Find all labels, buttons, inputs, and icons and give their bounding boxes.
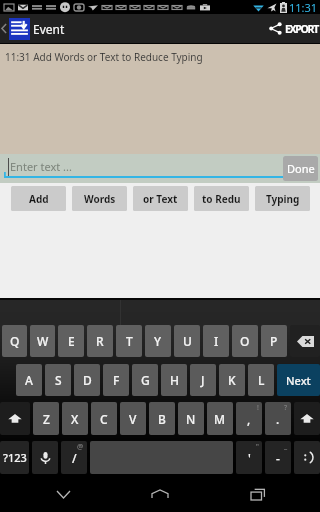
staticText: Enter text ... xyxy=(10,159,72,174)
staticText: M xyxy=(214,411,226,427)
button[interactable]: " xyxy=(236,441,262,474)
staticText: T xyxy=(126,333,133,349)
staticText: ' xyxy=(248,450,251,466)
staticText: J xyxy=(201,372,205,388)
button[interactable]: S xyxy=(45,364,71,396)
button[interactable]: B xyxy=(149,402,175,435)
staticText: " xyxy=(256,442,259,452)
button[interactable]: _ xyxy=(265,441,291,474)
staticText: 11:31 xyxy=(289,0,318,14)
button[interactable]: Back xyxy=(28,479,98,509)
staticText: Z xyxy=(43,411,50,427)
button[interactable]: Z xyxy=(33,402,59,435)
staticText: ? xyxy=(284,403,288,413)
staticText: N xyxy=(186,411,196,427)
staticText: U xyxy=(183,333,192,349)
staticText: C xyxy=(100,411,108,427)
staticText: . xyxy=(276,411,280,427)
button[interactable]: E xyxy=(58,325,84,357)
staticText: ?123 xyxy=(3,450,27,465)
staticText: ! xyxy=(257,403,259,413)
staticText: K xyxy=(228,372,236,388)
staticText: H xyxy=(170,372,179,388)
staticText: F xyxy=(113,372,120,388)
staticText: E xyxy=(68,333,75,349)
staticText: V xyxy=(129,411,137,427)
button[interactable]: C xyxy=(91,402,117,435)
staticText: A xyxy=(25,372,33,388)
button[interactable]: N xyxy=(178,402,204,435)
button[interactable]: O xyxy=(232,325,258,357)
staticText: S xyxy=(55,372,62,388)
button[interactable]: F xyxy=(103,364,129,396)
staticText: / xyxy=(72,450,77,466)
staticText: D xyxy=(83,372,92,388)
button[interactable]: Enter text ... xyxy=(4,154,280,183)
button[interactable]: Home xyxy=(125,479,195,509)
button[interactable]: Words xyxy=(72,186,127,211)
button[interactable]: I xyxy=(203,325,229,357)
staticText: Add xyxy=(29,192,49,206)
button[interactable]: X xyxy=(62,402,88,435)
button[interactable]: Y xyxy=(145,325,171,357)
button[interactable]: Recents xyxy=(223,479,293,509)
button[interactable]: T xyxy=(116,325,142,357)
button[interactable]: M xyxy=(207,402,233,435)
staticText: to Redu xyxy=(202,192,241,206)
button[interactable]: @ xyxy=(61,441,87,474)
button[interactable]: Navigate up xyxy=(0,14,69,43)
staticText: Words xyxy=(84,192,116,206)
button[interactable]: G xyxy=(132,364,158,396)
staticText: Done xyxy=(287,161,315,176)
staticText: X xyxy=(71,411,79,427)
button[interactable]: L xyxy=(248,364,274,396)
button[interactable]: Delete xyxy=(290,325,320,357)
staticText: Typing xyxy=(266,192,300,206)
button[interactable]: ?123 xyxy=(0,441,29,474)
button[interactable]: W xyxy=(30,325,55,357)
button[interactable]: A xyxy=(16,364,42,396)
button[interactable]: U xyxy=(174,325,200,357)
other: Shift xyxy=(8,413,22,425)
button[interactable]: Q xyxy=(2,325,27,357)
button[interactable]: Add xyxy=(11,186,66,211)
button[interactable]: V xyxy=(120,402,146,435)
staticText: _ xyxy=(284,442,288,452)
other: Shift xyxy=(300,413,314,425)
staticText: B xyxy=(158,411,166,427)
button[interactable]: D xyxy=(74,364,100,396)
button[interactable]: EXPORT xyxy=(261,14,320,43)
button[interactable]: Done xyxy=(283,156,318,181)
staticText: 11:31 Add Words or Text to Reduce Typing xyxy=(5,50,203,64)
button[interactable]: K xyxy=(219,364,245,396)
button[interactable]: Typing xyxy=(255,186,310,211)
button[interactable]: P xyxy=(261,325,287,357)
button[interactable]: Voice input xyxy=(32,441,58,474)
button[interactable]: Emoji xyxy=(294,441,320,474)
staticText: or Text xyxy=(143,192,178,206)
other: Voice input xyxy=(39,451,52,465)
staticText: P xyxy=(270,333,278,349)
staticText: W xyxy=(37,333,49,349)
staticText: O xyxy=(240,333,250,349)
staticText: I xyxy=(214,333,219,349)
button[interactable]: J xyxy=(190,364,216,396)
staticText: EXPORT xyxy=(285,22,318,36)
button[interactable]: ! xyxy=(236,402,262,435)
button[interactable]: Next xyxy=(277,364,320,396)
staticText: Next xyxy=(286,373,311,388)
staticText: R xyxy=(96,333,104,349)
button[interactable]: Shift xyxy=(294,402,320,435)
button[interactable]: or Text xyxy=(133,186,188,211)
staticText: Event xyxy=(33,21,65,37)
button[interactable]: Shift xyxy=(0,402,30,435)
button[interactable]: R xyxy=(87,325,113,357)
other: Emoji xyxy=(301,451,314,464)
button[interactable]: to Redu xyxy=(194,186,249,211)
button[interactable]: H xyxy=(161,364,187,396)
other: Delete xyxy=(297,336,314,347)
staticText: L xyxy=(258,372,265,388)
staticText: G xyxy=(141,372,150,388)
button[interactable]: ? xyxy=(265,402,291,435)
